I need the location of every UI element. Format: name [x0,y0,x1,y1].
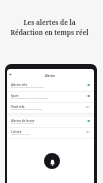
button[interactable]: Retour [9,73,12,76]
staticText: Recevez les infos essentielles [11,85,44,88]
staticText: Flash info [11,105,25,109]
staticText: Les titres du jour [11,132,30,135]
staticText: Alertes [45,74,55,78]
staticText: Les nouvelles de votre commune [11,96,48,99]
button[interactable]: Sport [7,92,94,103]
staticText: Alertes info [11,83,28,87]
button[interactable]: Culture [7,128,94,139]
button[interactable]: Alertes info [7,81,94,92]
staticText: Nos idées de sorties [11,121,34,124]
button[interactable]: Activer les notifications [44,153,60,169]
button[interactable]: Alertes de la une [7,117,94,128]
staticText: Alertes de la une [11,119,35,123]
staticText: Culture [11,130,22,134]
staticText: Sport [11,94,19,98]
staticText: Scores, matchs et transferts [11,107,43,110]
button[interactable]: Flash info [7,103,94,114]
staticText: Les alertes de la Rédaction en temps rée… [3,18,96,37]
